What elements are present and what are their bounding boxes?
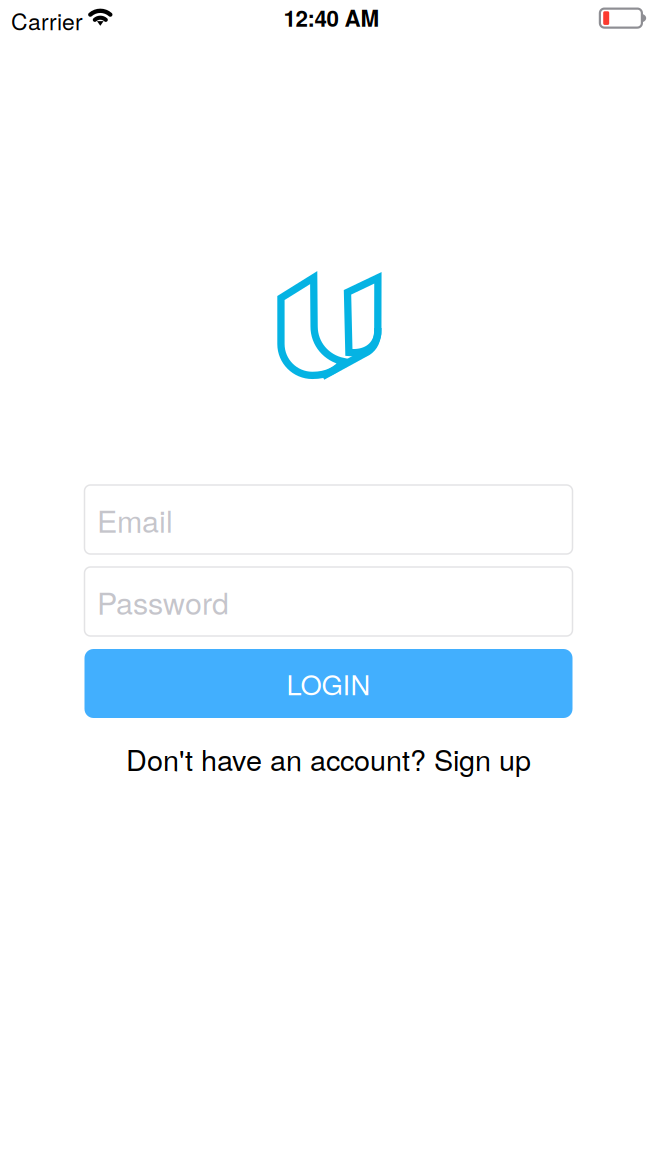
staticText: Carrier <box>11 4 83 37</box>
button[interactable]: Don't have an account? Sign up <box>126 738 531 779</box>
staticText: Email <box>97 498 173 541</box>
staticText: LOGIN <box>286 664 370 703</box>
staticText: 12:40 AM <box>283 1 379 34</box>
staticText: Don't have an account? Sign up <box>126 738 531 779</box>
staticText: Password <box>97 580 229 623</box>
button[interactable]: LOGIN <box>84 649 572 718</box>
